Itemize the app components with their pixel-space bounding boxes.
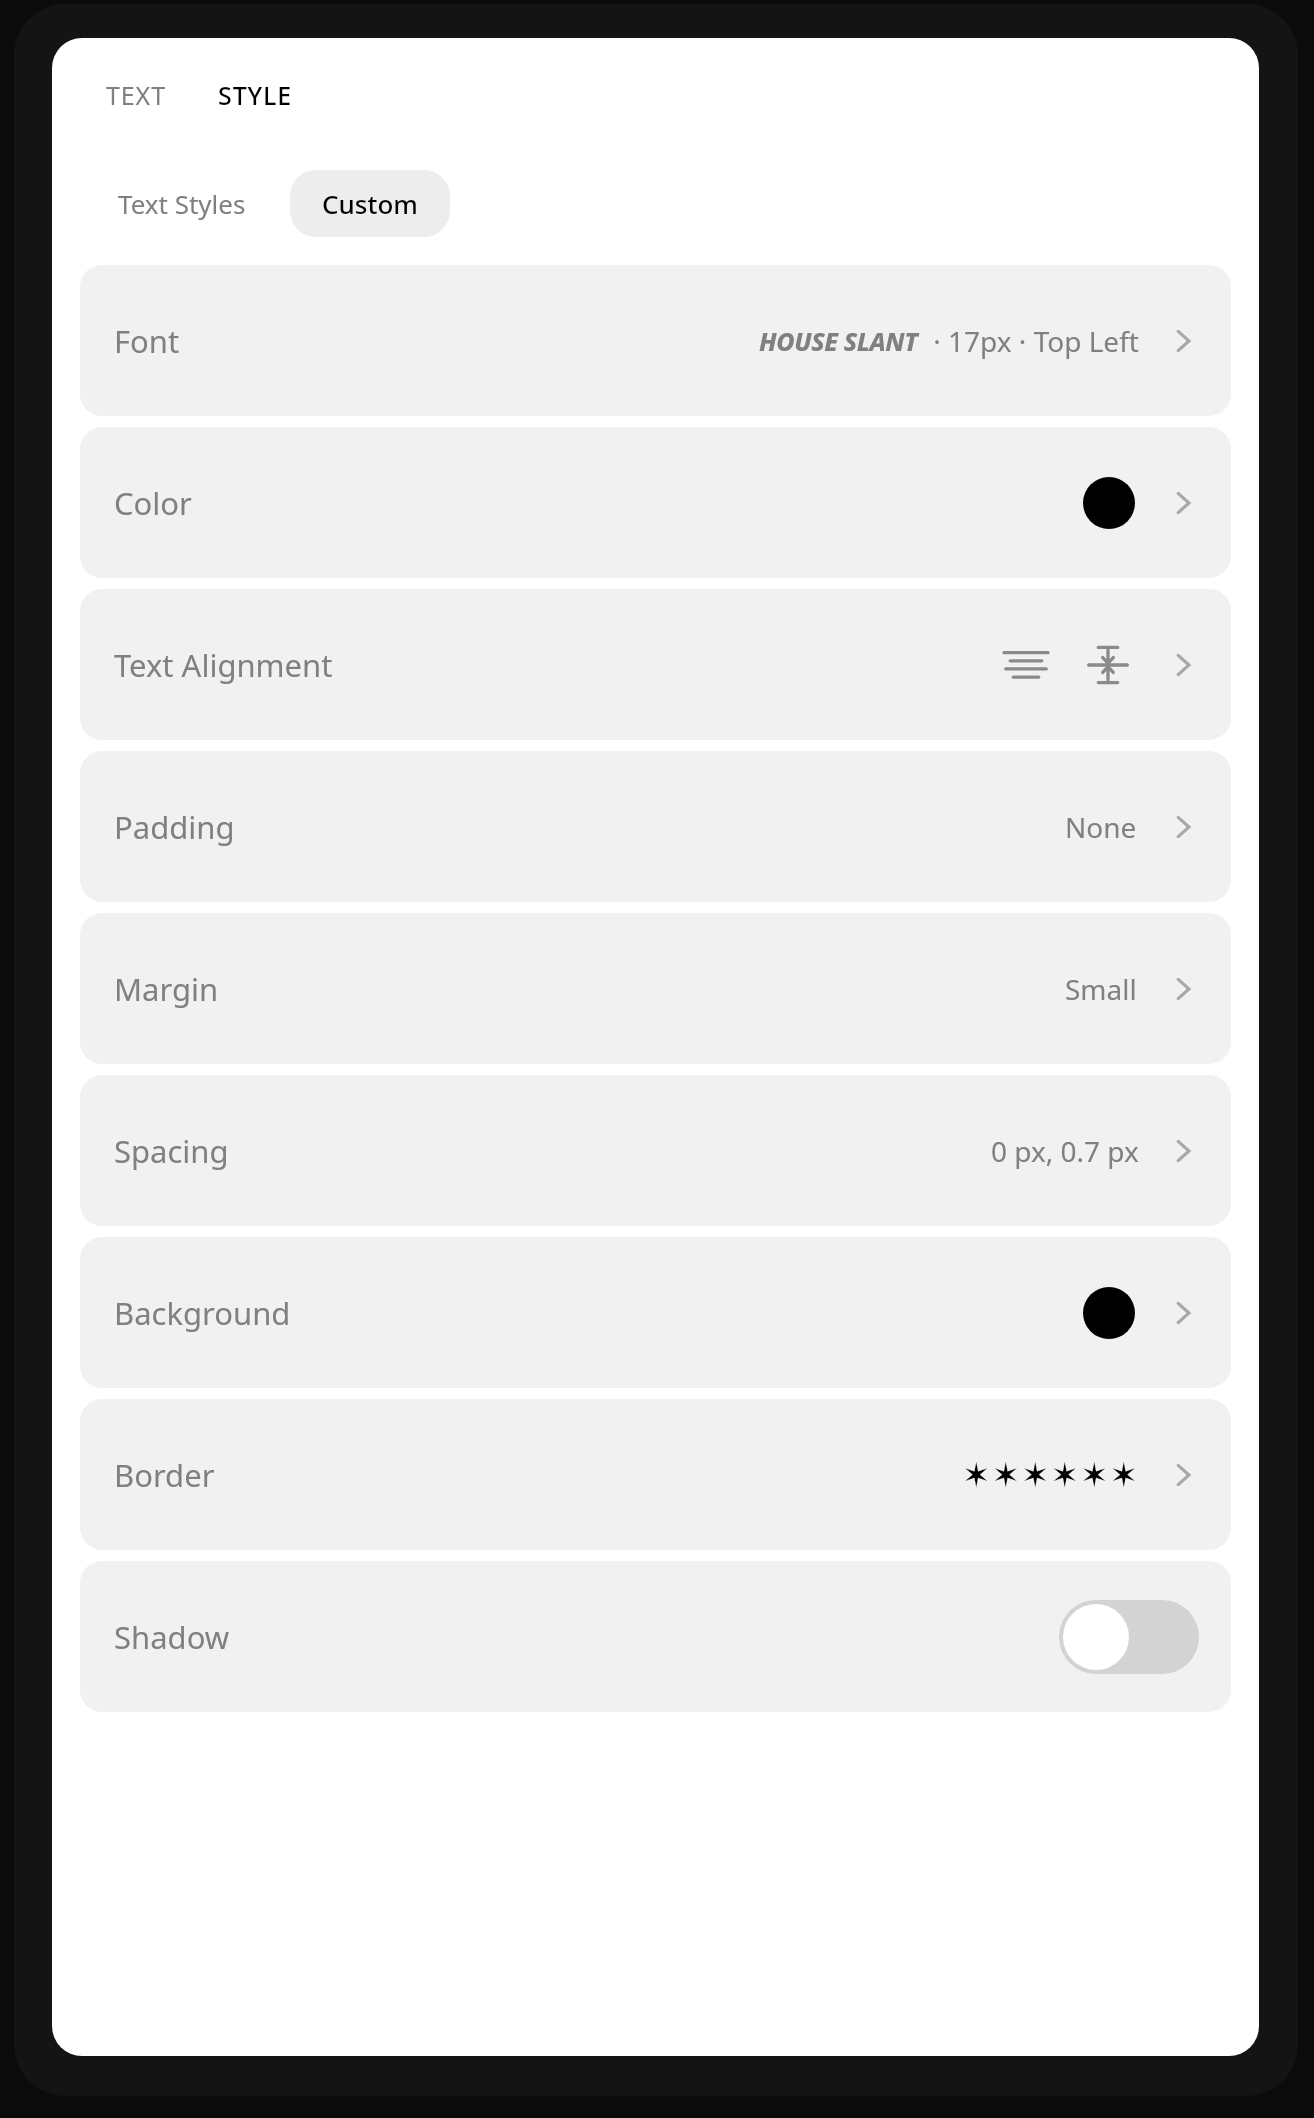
button[interactable]: Open xyxy=(1161,481,1205,525)
staticText: TEXT xyxy=(106,78,166,112)
button[interactable]: Text Styles xyxy=(94,170,270,237)
staticText: None xyxy=(1065,808,1137,846)
button[interactable]: Color xyxy=(80,427,1231,578)
button[interactable]: STYLE xyxy=(214,72,297,118)
button[interactable]: Padding xyxy=(80,751,1231,902)
staticText: Color xyxy=(114,482,192,524)
button[interactable]: Horizontal alignment xyxy=(999,638,1053,692)
staticText: Small xyxy=(1065,970,1137,1008)
button[interactable]: Border xyxy=(80,1399,1231,1550)
staticText: STYLE xyxy=(218,78,293,112)
staticText: Text Alignment xyxy=(114,644,333,686)
staticText: Custom xyxy=(322,186,418,221)
staticText: HOUSE SLANT xyxy=(759,324,918,358)
staticText: Shadow xyxy=(114,1616,230,1658)
button[interactable]: Shadow xyxy=(80,1561,1231,1712)
staticText: Background xyxy=(114,1292,291,1334)
staticText: Margin xyxy=(114,968,219,1010)
staticText: ✶✶✶✶✶✶ xyxy=(962,1455,1139,1495)
staticText: Padding xyxy=(114,806,235,848)
button[interactable]: Open xyxy=(1161,1129,1205,1173)
button[interactable]: Text Alignment xyxy=(80,589,1231,740)
button[interactable]: Background xyxy=(80,1237,1231,1388)
staticText: · 17px · Top Left xyxy=(926,322,1139,360)
button[interactable]: Spacing xyxy=(80,1075,1231,1226)
button[interactable]: Open xyxy=(1161,805,1205,849)
staticText: Spacing xyxy=(114,1130,229,1172)
staticText: Font xyxy=(114,320,180,362)
staticText: Border xyxy=(114,1454,215,1496)
button[interactable]: Open xyxy=(1161,967,1205,1011)
button[interactable]: Open xyxy=(1161,319,1205,363)
button[interactable]: Margin xyxy=(80,913,1231,1064)
staticText: 0 px, 0.7 px xyxy=(991,1132,1139,1170)
button[interactable]: Shadow toggle xyxy=(1059,1600,1199,1674)
button[interactable]: Open xyxy=(1161,643,1205,687)
button[interactable]: Custom xyxy=(290,170,450,237)
button[interactable]: Vertical alignment xyxy=(1081,638,1135,692)
staticText: Text Styles xyxy=(118,186,246,221)
button[interactable]: Open xyxy=(1161,1453,1205,1497)
button[interactable]: TEXT xyxy=(102,72,170,118)
button[interactable]: Font xyxy=(80,265,1231,416)
button[interactable]: Open xyxy=(1161,1291,1205,1335)
